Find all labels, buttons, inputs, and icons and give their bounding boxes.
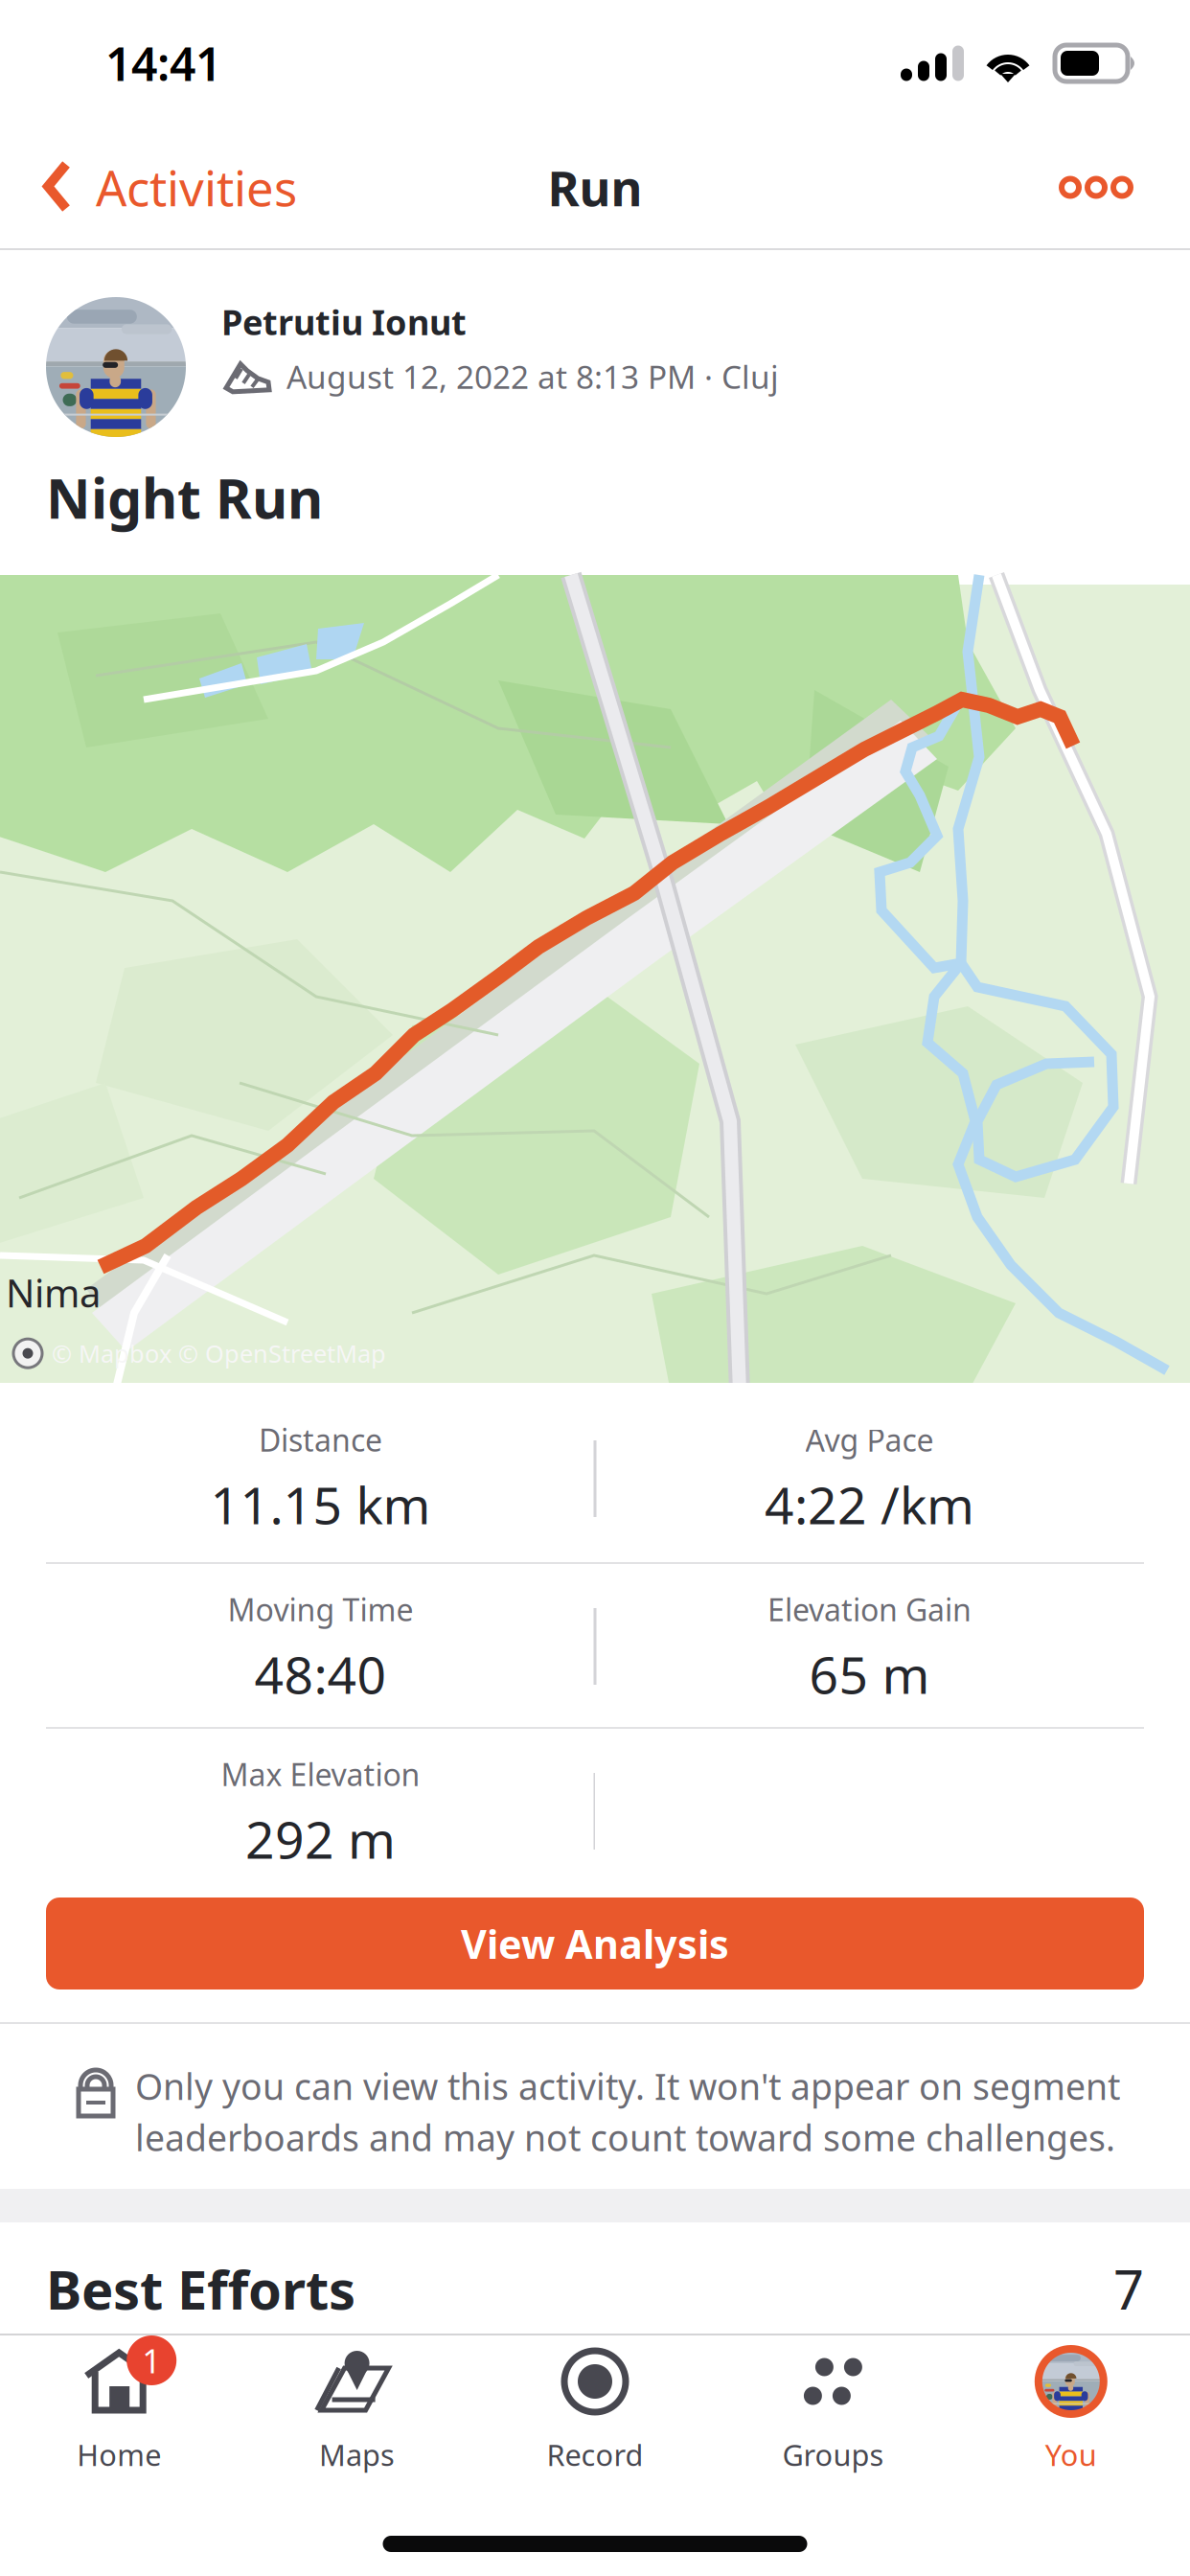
staticText: 48:40 [254,1640,387,1708]
staticText: Max Elevation [221,1754,420,1794]
button[interactable]: You [952,2335,1190,2576]
staticText: Best Efforts [46,2253,355,2324]
button[interactable]: View Analysis [46,1897,1144,1989]
staticText: Record [547,2435,643,2474]
staticText: Petrutiu Ionut [221,299,467,345]
button[interactable]: Record [476,2335,714,2576]
staticText: 292 m [245,1805,396,1873]
staticText: August 12, 2022 at 8:13 PM · Cluj [286,355,779,398]
staticText: Home [77,2435,161,2474]
staticText: © Mapbox © OpenStreetMap [52,1337,386,1369]
staticText: Moving Time [228,1589,413,1630]
staticText: Maps [319,2435,395,2474]
button[interactable]: Best Efforts [0,2222,1190,2334]
staticText: Only you can view this activity. It won'… [135,2062,1120,2161]
button[interactable]: Groups [714,2335,952,2576]
staticText: Activities [96,155,297,220]
staticText: Avg Pace [805,1419,934,1460]
staticText: Run [548,155,642,220]
staticText: 4:22 /km [765,1471,974,1538]
staticText: Groups [782,2435,884,2474]
button[interactable]: Maps [238,2335,476,2576]
staticText: 14:41 [105,33,221,94]
button[interactable]: More options [1048,140,1144,234]
staticText: Night Run [46,461,323,534]
staticText: 1 [142,2338,161,2382]
staticText: Elevation Gain [767,1589,972,1630]
staticText: Distance [259,1419,382,1460]
button[interactable]: 1 [0,2335,238,2576]
staticText: 11.15 km [210,1471,431,1538]
staticText: 65 m [809,1640,930,1708]
button[interactable]: Activities [42,136,297,239]
staticText: View Analysis [461,1917,729,1970]
button[interactable]: Petrutiu Ionut profile photo [46,297,186,437]
staticText: Nima [6,1267,101,1318]
staticText: You [1045,2435,1097,2474]
staticText: 7 [1113,2253,1144,2324]
